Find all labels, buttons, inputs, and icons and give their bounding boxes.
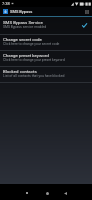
staticText: Click here to change your secret code — [3, 42, 60, 46]
button[interactable]: Back — [57, 185, 73, 200]
button[interactable]: SMS Bypass Service — [0, 17, 92, 34]
button[interactable]: Home — [39, 185, 55, 200]
staticText: SMS Bypass service enabled — [3, 25, 47, 29]
button[interactable]: More options — [82, 7, 91, 16]
staticText: SMS Bypass Service — [3, 20, 43, 25]
staticText: Change preset keyword — [3, 53, 49, 58]
staticText: List of all contacts that you have block… — [3, 74, 65, 78]
staticText: Blocked contacts — [3, 69, 37, 74]
button[interactable]: Blocked contacts — [0, 67, 92, 82]
staticText: SMS Bypass — [10, 9, 33, 14]
button[interactable]: Recents — [19, 185, 35, 200]
staticText: 7:38 — [2, 1, 10, 6]
staticText: Change secret code — [3, 37, 42, 42]
button[interactable]: Change secret code — [0, 35, 92, 50]
button[interactable]: Change preset keyword — [0, 51, 92, 66]
staticText: Click here to change your preset keyword — [3, 58, 65, 62]
